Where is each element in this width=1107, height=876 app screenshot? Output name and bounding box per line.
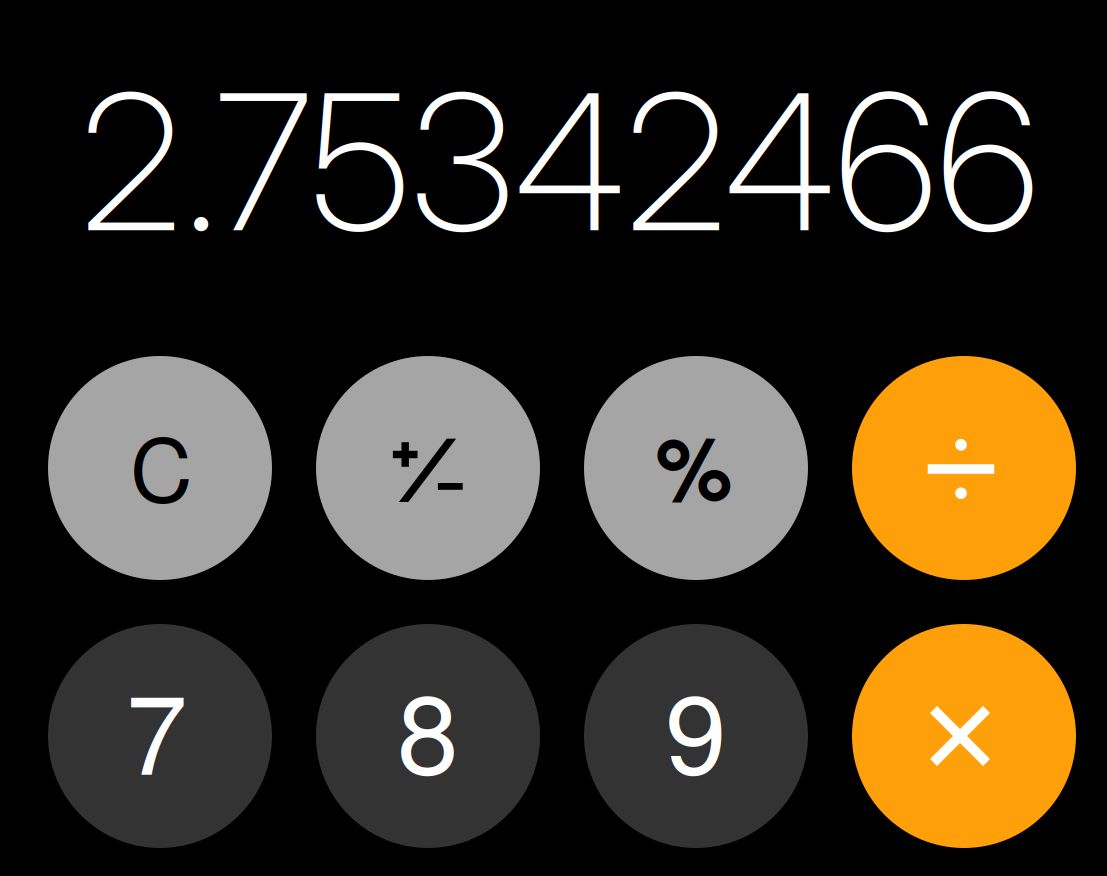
staticText: 8	[397, 647, 459, 806]
button[interactable]: Multiply	[852, 624, 1076, 848]
button[interactable]: Divide	[852, 356, 1076, 580]
button[interactable]: 7	[48, 624, 272, 848]
staticText: 9	[665, 647, 727, 806]
staticText: 7	[126, 648, 188, 806]
button[interactable]: C	[48, 356, 272, 580]
staticText: C	[130, 402, 193, 526]
button[interactable]: Plus Minus	[316, 356, 540, 580]
button[interactable]: %	[584, 356, 808, 580]
button[interactable]: 8	[316, 624, 540, 848]
button[interactable]: 9	[584, 624, 808, 848]
staticText: %	[655, 403, 732, 527]
staticText: 2.75342466	[80, 48, 1039, 275]
